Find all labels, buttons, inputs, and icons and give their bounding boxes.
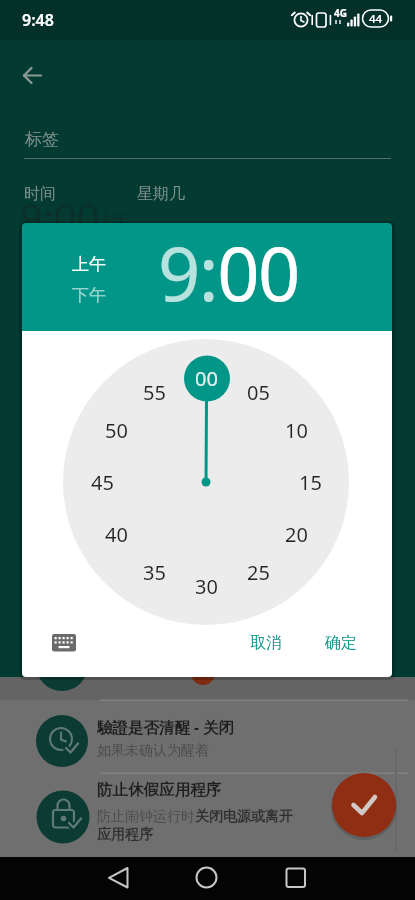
staticText: 防止闹钟运行时关闭电源或离开 应用程序 bbox=[97, 808, 293, 843]
button[interactable] bbox=[275, 857, 317, 900]
button[interactable]: 标签 bbox=[0, 120, 415, 165]
staticText: 20 bbox=[285, 521, 308, 545]
button[interactable]: 取消 bbox=[231, 623, 301, 663]
staticText: 9:00 bbox=[158, 223, 299, 323]
staticText: 15 bbox=[299, 469, 322, 493]
staticText: 标签 bbox=[25, 129, 59, 150]
staticText: 上午 bbox=[72, 254, 106, 275]
staticText: 00 bbox=[195, 365, 218, 389]
button[interactable]: 下午 bbox=[66, 281, 114, 308]
staticText: 25 bbox=[247, 559, 270, 583]
staticText: 45 bbox=[91, 469, 114, 493]
staticText: 9:48 bbox=[22, 9, 54, 31]
staticText: 35 bbox=[143, 559, 166, 583]
staticText: 44 bbox=[369, 11, 383, 27]
button[interactable] bbox=[14, 57, 50, 93]
staticText: 防止休假应用程序 bbox=[97, 780, 221, 800]
button[interactable]: 驗證是否清醒 - 关闭 bbox=[0, 702, 415, 772]
staticText: 50 bbox=[105, 417, 128, 441]
staticText: 40 bbox=[105, 521, 128, 545]
button[interactable] bbox=[44, 624, 88, 660]
staticText: 取消 bbox=[250, 633, 282, 653]
staticText: 如果未确认为醒着 bbox=[97, 742, 209, 760]
staticText: 05 bbox=[247, 379, 270, 403]
button[interactable]: 上午 bbox=[66, 249, 114, 276]
button[interactable]: 防止休假应用程序 bbox=[0, 775, 415, 857]
staticText: 9:00 bbox=[20, 190, 100, 244]
button[interactable] bbox=[186, 857, 228, 900]
staticText: 星期几 bbox=[137, 184, 185, 204]
staticText: 30 bbox=[195, 573, 218, 597]
staticText: 下午 bbox=[72, 285, 106, 306]
staticText: 4G bbox=[334, 6, 347, 20]
button[interactable] bbox=[98, 857, 140, 900]
staticText: 10 bbox=[285, 417, 308, 441]
staticText: 时间 bbox=[24, 184, 56, 204]
button[interactable] bbox=[332, 773, 396, 837]
staticText: 上午 bbox=[99, 210, 127, 228]
staticText: 55 bbox=[143, 379, 166, 403]
button[interactable]: 确定 bbox=[306, 623, 376, 663]
staticText: 驗證是否清醒 - 关闭 bbox=[97, 716, 235, 737]
staticText: 确定 bbox=[325, 633, 357, 653]
